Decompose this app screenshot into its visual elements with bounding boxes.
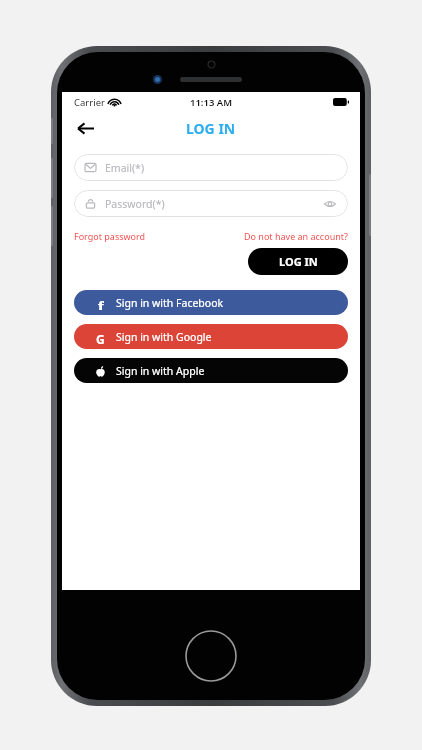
staticText: LOG IN bbox=[279, 254, 318, 269]
button[interactable]: Sign in with Apple bbox=[74, 358, 348, 383]
button[interactable]: Forgot password bbox=[74, 230, 146, 242]
staticText: Forgot password bbox=[74, 230, 146, 242]
staticText: LOG IN bbox=[186, 119, 236, 138]
button[interactable]: Back bbox=[70, 113, 100, 143]
button[interactable]: f bbox=[74, 290, 348, 315]
button[interactable]: Do not have an account? bbox=[244, 230, 348, 242]
staticText: Sign in with Google bbox=[116, 330, 212, 344]
button[interactable]: Email(*) bbox=[74, 154, 348, 181]
staticText: f bbox=[98, 297, 104, 310]
staticText: Sign in with Facebook bbox=[116, 296, 224, 310]
button[interactable]: Show password bbox=[323, 197, 337, 211]
button[interactable]: LOG IN bbox=[248, 248, 348, 275]
staticText: Email(*) bbox=[105, 161, 145, 175]
staticText: Sign in with Apple bbox=[116, 364, 205, 378]
staticText: Do not have an account? bbox=[244, 230, 348, 242]
staticText: 11:13 AM bbox=[190, 96, 233, 109]
button[interactable]: G bbox=[74, 324, 348, 349]
staticText: Carrier bbox=[74, 96, 105, 109]
staticText: G bbox=[96, 331, 105, 344]
staticText: Password(*) bbox=[105, 197, 165, 211]
button[interactable]: Password(*) bbox=[74, 190, 348, 217]
